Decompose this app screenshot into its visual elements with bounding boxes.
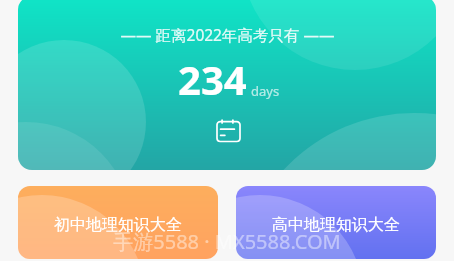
staticText: 234	[178, 52, 247, 106]
staticText: 手游5588 · MX5588.COM	[113, 228, 341, 255]
staticText: days	[251, 82, 280, 100]
staticText: 初中地理知识大全	[54, 215, 182, 235]
button[interactable]: 初中地理知识大全	[18, 186, 218, 259]
staticText: 高中地理知识大全	[272, 215, 400, 235]
button[interactable]: —— 距离2022年高考只有 ——	[18, 0, 436, 170]
button[interactable]: 高中地理知识大全	[236, 186, 436, 259]
staticText: —— 距离2022年高考只有 ——	[120, 24, 335, 45]
button[interactable]: Notes	[216, 120, 240, 144]
